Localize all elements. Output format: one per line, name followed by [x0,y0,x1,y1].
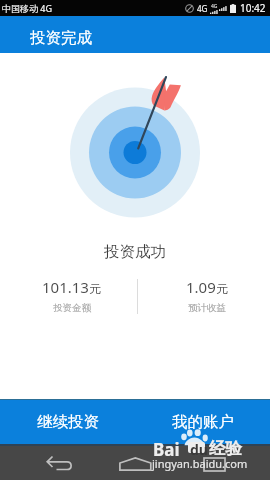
staticText: 1.09 [186,277,216,297]
staticText: 预计收益 [188,302,226,314]
staticText: 投资金额 [53,302,91,314]
staticText: 元 [89,281,101,296]
button[interactable]: 我的账户 [135,400,270,444]
staticText: 元 [216,281,228,296]
staticText: 经验 [209,438,242,459]
staticText: Bai [153,438,180,461]
button[interactable]: Home [119,457,152,471]
button[interactable]: Recent apps [203,457,226,472]
staticText: 继续投资 [37,412,99,432]
staticText: 投资成功 [104,242,166,262]
staticText: 我的账户 [172,412,234,432]
staticText: du [190,440,208,459]
staticText: 4G [197,3,208,14]
staticText: 4G [211,3,218,10]
staticText: 101.13 [42,277,89,297]
button[interactable]: Back [46,455,76,471]
staticText: 10:42 [240,1,266,15]
staticText: 投资完成 [30,28,92,48]
staticText: 中国移动 4G [2,2,53,14]
staticText: jingyan.baidu.com [152,456,248,471]
button[interactable]: 继续投资 [0,400,135,444]
